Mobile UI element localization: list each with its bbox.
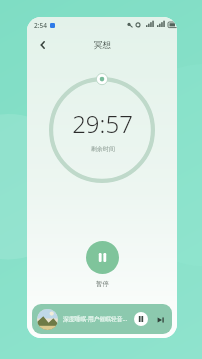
staticText: 冥想	[94, 40, 111, 51]
button[interactable]: Back	[34, 36, 52, 54]
staticText: 深度睡眠·用户催眠轻音...	[63, 315, 131, 323]
staticText: 剩余时间	[91, 145, 115, 153]
staticText: 2:54	[34, 21, 47, 30]
staticText: 29:57	[72, 107, 133, 140]
button[interactable]: Pause meditation	[86, 241, 119, 274]
button[interactable]: 深度睡眠·用户催眠轻音...	[32, 304, 172, 334]
button[interactable]: Next track	[154, 313, 167, 326]
button[interactable]: Pause track	[134, 312, 148, 326]
staticText: 暂停	[96, 280, 109, 288]
